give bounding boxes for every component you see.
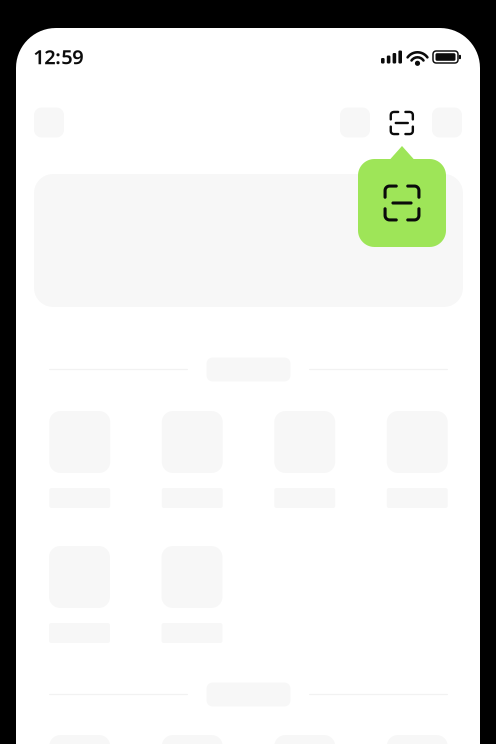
- button[interactable]: [162, 411, 223, 508]
- button[interactable]: Scan: [384, 105, 420, 141]
- button[interactable]: [49, 411, 110, 508]
- button[interactable]: [274, 411, 335, 508]
- button[interactable]: Scan code: [358, 146, 446, 247]
- button[interactable]: [49, 546, 110, 643]
- button[interactable]: [387, 411, 448, 508]
- staticText: 12:59: [33, 43, 83, 70]
